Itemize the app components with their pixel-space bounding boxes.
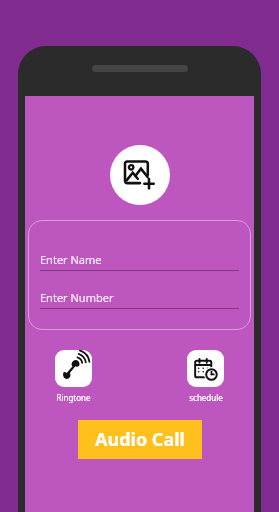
button[interactable]: Audio Call <box>78 420 202 459</box>
staticText: schedule <box>189 392 223 403</box>
staticText: Audio Call <box>95 427 185 452</box>
button[interactable]: Add image <box>110 145 170 205</box>
staticText: Enter Name <box>40 252 102 267</box>
button[interactable]: Enter Name <box>40 252 239 271</box>
staticText: Enter Number <box>40 290 114 305</box>
staticText: Ringtone <box>56 392 91 403</box>
button[interactable]: Enter Number <box>40 290 239 309</box>
button[interactable]: Ringtone <box>55 350 92 403</box>
button[interactable]: schedule <box>187 350 224 403</box>
